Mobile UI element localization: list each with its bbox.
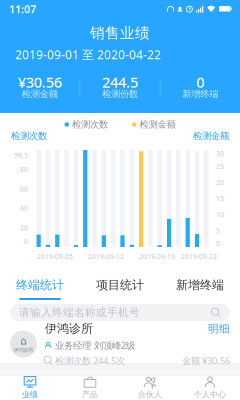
staticText: 伊鸿诊所 [45,321,93,336]
staticText: 金额 ¥30.56 [182,354,230,367]
staticText: ⌂ [20,335,27,347]
staticText: 检测次数 244.5次 [55,354,125,367]
staticText: 0 [196,72,204,92]
staticText: 2019-09-23 [181,252,217,261]
button[interactable]: 终端统计 [0,272,80,300]
staticText: 销售业绩 [90,24,150,42]
button[interactable]: 产品 [60,375,120,400]
staticText: 10 [216,210,224,219]
staticText: 产品 [82,390,98,399]
staticText: 2019-09-01 至 2020-04-22 [15,46,161,62]
staticText: 个人中心 [194,390,226,399]
staticText: 业绩 [22,390,38,399]
staticText: 2019-09-19 [139,252,175,261]
button[interactable]: 合伙人 [120,375,180,400]
staticText: 40 [20,204,28,213]
button[interactable]: 项目统计 [80,272,160,300]
staticText: 11:07 [9,2,36,16]
staticText: 80 [20,165,28,174]
staticText: 0 [24,237,28,246]
staticText: 检测次数 [11,130,47,142]
staticText: 244.5 [102,72,138,92]
staticText: 20 [216,178,224,187]
staticText: 合伙人 [138,390,162,399]
staticText: 25 [216,162,224,171]
staticText: 检测金额 [22,88,58,100]
button[interactable]: 新增终端 [160,272,240,300]
staticText: 伊鸿诊所 [13,347,33,353]
button[interactable]: ⌂ [0,325,240,363]
staticText: 检测金额 [136,119,175,130]
staticText: 2019-09-05 [37,252,73,261]
staticText: 15 [216,194,224,203]
staticText: 检测次数 [69,119,108,130]
staticText: 新增终端 [182,88,218,100]
staticText: 20 [20,223,28,232]
button[interactable]: 业绩 [0,375,60,400]
staticText: 业务经理 刘顶峰2级 [55,339,135,351]
staticText: 2019-09-12 [88,252,124,261]
staticText: 60 [20,184,28,193]
staticText: 终端统计 [16,278,64,292]
button[interactable]: 个人中心 [180,375,240,400]
staticText: 5 [216,226,220,235]
staticText: 检测份数 [102,88,138,100]
button[interactable]: 请输入终端名称或手机号 [0,304,240,321]
staticText: 项目统计 [96,278,144,292]
staticText: 检测金额 [193,130,229,142]
staticText: 30 [216,149,224,158]
staticText: ¥30.56 [18,72,62,92]
staticText: 96.5 [14,151,28,160]
staticText: 新增终端 [176,278,224,292]
staticText: 明细 [208,322,230,335]
staticText: 0 [216,239,220,248]
staticText: 请输入终端名称或手机号 [19,306,140,319]
